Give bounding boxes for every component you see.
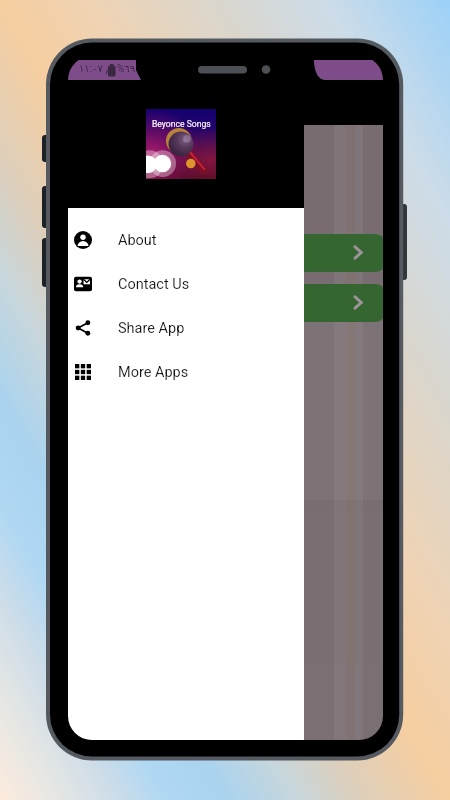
staticText: م ١١:٠٧ — [79, 63, 112, 75]
staticText: %٦٩ — [117, 63, 136, 75]
button[interactable]: More Apps — [68, 350, 304, 394]
staticText: Beyonce Songs — [152, 119, 211, 129]
staticText: Contact Us — [118, 276, 190, 293]
button[interactable]: Share App — [68, 306, 304, 350]
staticText: Share App — [118, 320, 185, 337]
button[interactable]: Contact Us — [68, 262, 304, 306]
button[interactable]: About — [68, 218, 304, 262]
staticText: About — [118, 232, 157, 249]
staticText: More Apps — [118, 364, 189, 381]
